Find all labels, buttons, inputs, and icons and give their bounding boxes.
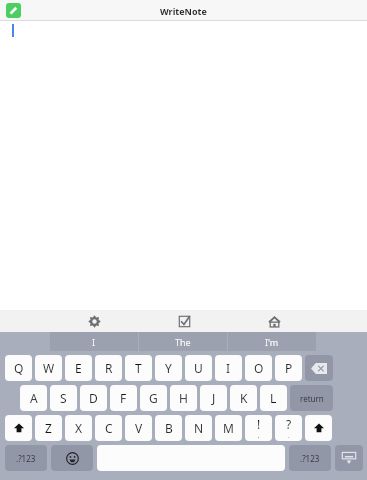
staticText: I (92, 336, 96, 348)
button[interactable]: Y (155, 355, 182, 381)
button[interactable]: N (185, 415, 212, 441)
staticText: WriteNote (160, 5, 207, 17)
staticText: R (105, 360, 113, 376)
button[interactable]: New note (6, 3, 21, 18)
staticText: W (43, 360, 55, 376)
button[interactable]: I (215, 355, 242, 381)
button[interactable]: H (170, 385, 197, 411)
staticText: F (120, 390, 127, 406)
button[interactable]: W (35, 355, 62, 381)
button[interactable]: F (110, 385, 137, 411)
button[interactable]: L (260, 385, 287, 411)
staticText: L (270, 390, 277, 406)
button[interactable]: .?123 (289, 445, 331, 471)
button[interactable]: G (140, 385, 167, 411)
button[interactable]: Shift (305, 415, 332, 441)
staticText: D (89, 390, 98, 406)
button[interactable]: T (125, 355, 152, 381)
button[interactable]: X (65, 415, 92, 441)
button[interactable]: Emoji (51, 445, 93, 471)
button[interactable]: .?123 (5, 445, 47, 471)
button[interactable]: Hide keyboard (335, 445, 363, 471)
staticText: . (288, 432, 290, 440)
button[interactable]: return (290, 385, 333, 411)
staticText: B (165, 420, 173, 436)
staticText: return (300, 393, 324, 404)
staticText: E (75, 360, 82, 376)
staticText: .?123 (300, 453, 320, 464)
button[interactable]: E (65, 355, 92, 381)
button[interactable]: D (80, 385, 107, 411)
button[interactable]: K (230, 385, 257, 411)
button[interactable]: Space (97, 445, 285, 471)
button[interactable]: B (155, 415, 182, 441)
staticText: Z (45, 420, 52, 436)
button[interactable]: R (95, 355, 122, 381)
button[interactable]: Settings (79, 310, 109, 332)
staticText: M (223, 420, 234, 436)
staticText: Q (14, 360, 24, 376)
button[interactable]: J (200, 385, 227, 411)
staticText: G (149, 390, 158, 406)
staticText: K (240, 390, 248, 406)
button[interactable]: S (50, 385, 77, 411)
staticText: S (60, 390, 67, 406)
button[interactable]: Q (5, 355, 32, 381)
staticText: P (285, 360, 293, 376)
button[interactable]: Checklist (169, 310, 199, 332)
button[interactable]: Shift (5, 415, 32, 441)
button[interactable]: ? (275, 415, 302, 441)
staticText: I'm (265, 336, 279, 348)
button[interactable]: M (215, 415, 242, 441)
staticText: O (254, 360, 264, 376)
button[interactable]: V (125, 415, 152, 441)
button[interactable]: I'm (228, 332, 316, 351)
button[interactable]: Z (35, 415, 62, 441)
staticText: ? (286, 416, 292, 432)
button[interactable]: The (139, 332, 227, 351)
button[interactable]: I (50, 332, 138, 351)
staticText: V (135, 420, 143, 436)
staticText: J (212, 390, 216, 406)
staticText: H (179, 390, 188, 406)
button[interactable]: Home (259, 310, 289, 332)
staticText: Y (165, 360, 172, 376)
staticText: I (226, 360, 231, 376)
staticText: .?123 (16, 453, 36, 464)
staticText: U (194, 360, 203, 376)
staticText: , (258, 432, 260, 440)
button[interactable]: O (245, 355, 272, 381)
staticText: The (175, 336, 191, 348)
button[interactable]: A (20, 385, 47, 411)
staticText: N (194, 420, 204, 436)
staticText: ! (257, 416, 261, 432)
button[interactable]: ! (245, 415, 272, 441)
button[interactable]: C (95, 415, 122, 441)
staticText: C (105, 420, 113, 436)
staticText: T (135, 360, 142, 376)
button[interactable]: Backspace (305, 355, 333, 381)
button[interactable]: U (185, 355, 212, 381)
staticText: X (75, 420, 83, 436)
button[interactable]: P (275, 355, 302, 381)
staticText: A (30, 390, 38, 406)
